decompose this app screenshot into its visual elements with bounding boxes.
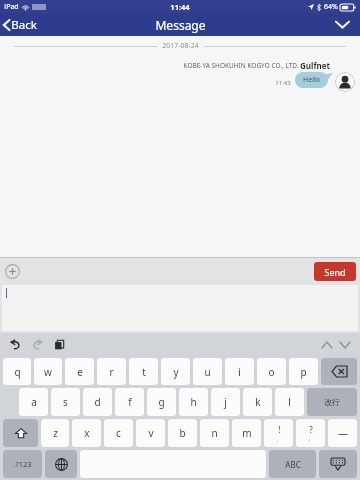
button[interactable]: ? [296, 419, 325, 447]
staticText: — [338, 426, 348, 440]
staticText: g [158, 395, 165, 409]
staticText: 改行 [324, 397, 340, 407]
staticText: a [31, 395, 37, 409]
staticText: j [224, 395, 227, 409]
staticText: Back [11, 17, 37, 33]
staticText: d [94, 395, 101, 409]
button[interactable]: Redo [29, 335, 46, 354]
button[interactable]: r [97, 358, 126, 385]
button[interactable]: l [275, 388, 304, 416]
button[interactable]: v [136, 419, 165, 447]
button[interactable]: m [232, 419, 261, 447]
button[interactable]: Send [314, 262, 356, 281]
button[interactable]: ! [264, 419, 293, 447]
button[interactable]: Previous [318, 337, 336, 353]
staticText: 。 [308, 435, 314, 442]
staticText: ? [309, 424, 313, 435]
staticText: s [63, 395, 68, 409]
staticText: 64% [324, 2, 338, 12]
button[interactable]: s [51, 388, 80, 416]
staticText: 11:44 [170, 2, 190, 12]
button[interactable]: Backspace [321, 358, 357, 385]
button[interactable]: n [200, 419, 229, 447]
button[interactable]: Attach [0, 261, 26, 282]
button[interactable]: p [289, 358, 318, 385]
staticText: p [300, 365, 307, 379]
staticText: w [44, 365, 52, 379]
staticText: u [204, 365, 211, 379]
staticText: ! [278, 424, 281, 435]
staticText: 11:43 [275, 79, 291, 87]
staticText: n [211, 426, 218, 440]
button[interactable]: t [129, 358, 158, 385]
button[interactable]: Paste [51, 335, 68, 354]
button[interactable]: Change keyboard [45, 450, 77, 478]
button[interactable]: g [147, 388, 176, 416]
staticText: Gulfnet [300, 60, 330, 71]
button[interactable]: e [65, 358, 94, 385]
staticText: Hello [303, 75, 320, 85]
staticText: h [190, 395, 197, 409]
staticText: l [288, 395, 291, 409]
staticText: r [109, 365, 114, 379]
button[interactable]: h [179, 388, 208, 416]
button[interactable]: Next [336, 337, 354, 353]
staticText: k [255, 395, 261, 409]
staticText: Message [155, 17, 206, 33]
staticText: b [179, 426, 186, 440]
button[interactable]: 改行 [307, 388, 357, 416]
button[interactable]: ABC [269, 450, 316, 478]
staticText: .?123 [13, 459, 32, 469]
staticText: q [14, 365, 21, 379]
staticText: KOBE-YA SHOKUHIN KOGYO CO., LTD. [183, 61, 299, 70]
staticText: ABC [285, 459, 301, 470]
button[interactable]: Collapse [325, 16, 360, 33]
button[interactable]: y [161, 358, 190, 385]
staticText: Send [324, 266, 346, 278]
staticText: f [128, 395, 132, 409]
staticText: i [238, 365, 241, 379]
staticText: x [84, 426, 90, 440]
staticText: o [268, 365, 275, 379]
button[interactable]: b [168, 419, 197, 447]
button[interactable]: f [115, 388, 144, 416]
button[interactable]: Back [0, 14, 45, 36]
button[interactable]: x [72, 419, 101, 447]
button[interactable]: d [83, 388, 112, 416]
staticText: 2017-08-24 [162, 41, 199, 51]
button[interactable]: — [328, 419, 357, 447]
staticText: z [53, 426, 58, 440]
staticText: y [173, 365, 179, 379]
button[interactable]: o [257, 358, 286, 385]
button[interactable] [2, 285, 358, 331]
button[interactable]: .?123 [3, 450, 42, 478]
button[interactable]: w [34, 358, 62, 385]
button[interactable]: a [19, 388, 48, 416]
button[interactable]: c [104, 419, 133, 447]
button[interactable]: z [41, 419, 69, 447]
button[interactable]: Sender avatar [335, 72, 355, 92]
staticText: t [142, 365, 146, 379]
staticText: v [148, 426, 154, 440]
button[interactable]: Shift [3, 419, 38, 447]
button[interactable]: Hide keyboard [319, 450, 357, 478]
staticText: iPad [4, 2, 19, 12]
button[interactable]: q [3, 358, 31, 385]
button[interactable]: Undo [7, 335, 24, 354]
staticText: c [116, 426, 121, 440]
staticText: m [242, 426, 252, 440]
button[interactable]: j [211, 388, 240, 416]
button[interactable]: i [225, 358, 254, 385]
button[interactable]: k [243, 388, 272, 416]
staticText: 、 [276, 435, 282, 442]
button[interactable]: u [193, 358, 222, 385]
staticText: e [77, 365, 83, 379]
